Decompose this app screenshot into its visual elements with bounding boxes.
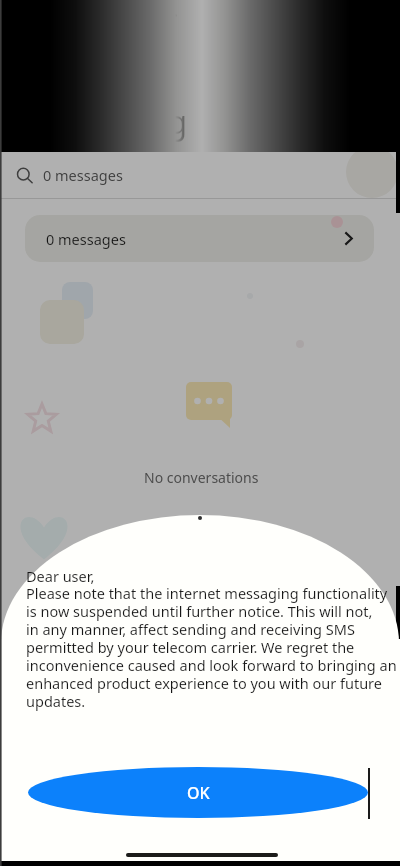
staticText: 0 messages bbox=[46, 229, 126, 249]
staticText: Messaging bbox=[24, 100, 188, 144]
staticText: 0 messages bbox=[43, 165, 123, 185]
staticText: 9:41 AM bbox=[63, 9, 105, 24]
staticText: Dear user, Please note that the internet… bbox=[26, 566, 397, 711]
button[interactable]: OK bbox=[28, 767, 368, 818]
staticText: No conversations bbox=[144, 468, 259, 487]
staticText: OK bbox=[187, 782, 210, 804]
button[interactable]: Search bbox=[0, 152, 400, 198]
other: Search bbox=[16, 167, 33, 184]
button[interactable]: 0 messages bbox=[25, 215, 374, 262]
